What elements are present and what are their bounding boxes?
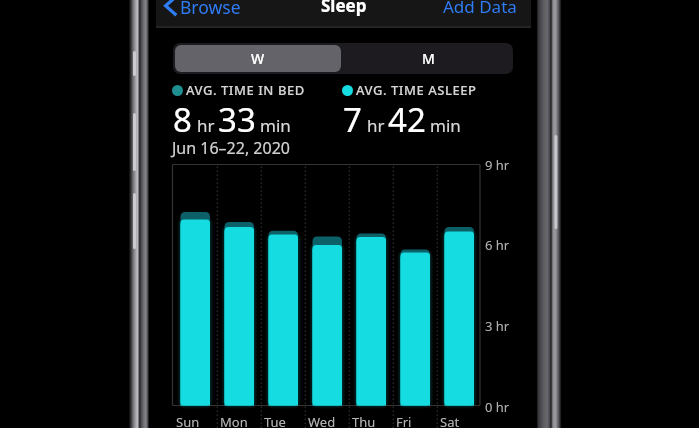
staticText: Wed	[308, 413, 336, 428]
button[interactable]: Back to Browse	[160, 0, 244, 22]
staticText: 6 hr	[485, 236, 510, 254]
staticText: Sun	[176, 413, 200, 428]
staticText: hr	[367, 114, 385, 137]
staticText: 3 hr	[485, 317, 510, 335]
staticText: Add Data	[443, 0, 517, 17]
staticText: Jun 16–22, 2020	[172, 137, 290, 159]
staticText: 9 hr	[485, 156, 510, 174]
button[interactable]: W	[175, 45, 341, 72]
button[interactable]: M	[343, 43, 513, 74]
staticText: Tue	[264, 413, 286, 428]
staticText: AVG. TIME ASLEEP	[356, 81, 477, 99]
staticText: 0 hr	[485, 398, 510, 416]
staticText: Mon	[220, 413, 248, 428]
staticText: 7	[343, 97, 362, 142]
staticText: Fri	[396, 413, 412, 428]
staticText: AVG. TIME IN BED	[186, 81, 305, 99]
staticText: M	[422, 49, 435, 68]
staticText: W	[251, 49, 265, 68]
staticText: Sat	[440, 413, 460, 428]
staticText: 42	[388, 97, 426, 142]
staticText: 33	[218, 97, 256, 142]
staticText: Thu	[352, 413, 376, 428]
staticText: Browse	[180, 0, 241, 19]
button[interactable]: Add Data	[443, 0, 517, 17]
staticText: min	[430, 114, 461, 137]
staticText: 8	[173, 97, 192, 142]
staticText: hr	[197, 114, 215, 137]
staticText: Sleep	[321, 0, 367, 16]
staticText: min	[260, 114, 291, 137]
